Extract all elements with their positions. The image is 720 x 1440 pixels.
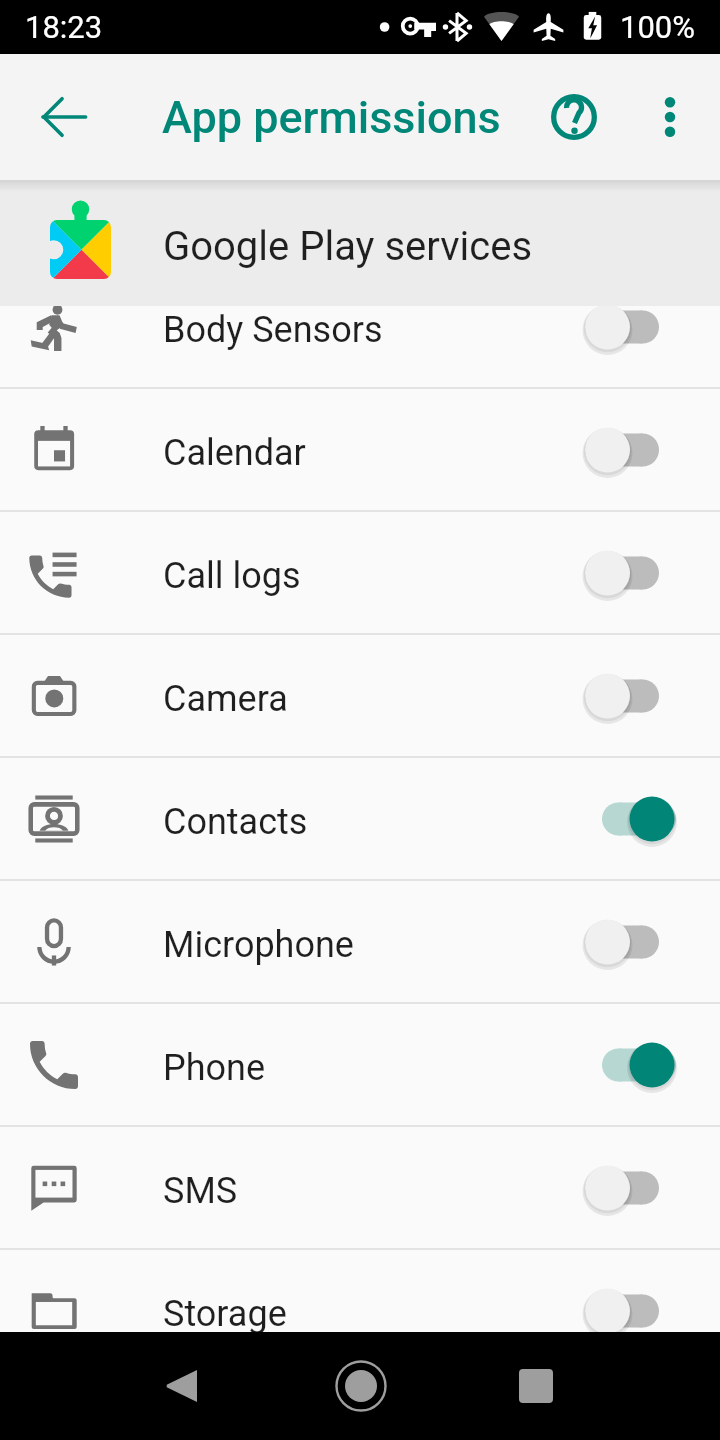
- button[interactable]: Google Play services: [0, 180, 720, 306]
- button[interactable]: SMS: [0, 1127, 720, 1248]
- button[interactable]: Calendar: [0, 389, 720, 510]
- staticText: Google Play services: [163, 223, 533, 270]
- button[interactable]: On: [571, 1025, 689, 1105]
- button[interactable]: More options: [622, 69, 718, 165]
- staticText: 100%: [620, 9, 695, 45]
- button[interactable]: Navigate up: [16, 69, 112, 165]
- button[interactable]: Off: [571, 410, 689, 490]
- staticText: SMS: [163, 1170, 238, 1212]
- button[interactable]: Off: [571, 1148, 689, 1228]
- staticText: Camera: [163, 678, 288, 720]
- button[interactable]: Contacts: [0, 758, 720, 879]
- button[interactable]: Body Sensors: [0, 266, 720, 387]
- button[interactable]: Home: [316, 1341, 406, 1431]
- staticText: Phone: [163, 1047, 266, 1089]
- staticText: Storage: [163, 1293, 287, 1335]
- button[interactable]: Recent apps: [491, 1341, 581, 1431]
- button[interactable]: Back: [136, 1341, 226, 1431]
- staticText: Contacts: [163, 801, 308, 843]
- staticText: Body Sensors: [163, 309, 383, 351]
- button[interactable]: Off: [571, 656, 689, 736]
- button[interactable]: Call logs: [0, 512, 720, 633]
- button[interactable]: Help: [526, 69, 622, 165]
- staticText: Call logs: [163, 555, 301, 597]
- staticText: Calendar: [163, 432, 306, 474]
- button[interactable]: Off: [571, 533, 689, 613]
- staticText: App permissions: [162, 91, 501, 144]
- button[interactable]: On: [571, 779, 689, 859]
- button[interactable]: Off: [571, 902, 689, 982]
- button[interactable]: Off: [571, 287, 689, 367]
- button[interactable]: Storage: [0, 1250, 720, 1371]
- staticText: Microphone: [163, 924, 354, 966]
- button[interactable]: Camera: [0, 635, 720, 756]
- staticText: 18:23: [25, 9, 103, 45]
- button[interactable]: Off: [571, 1271, 689, 1351]
- button[interactable]: Phone: [0, 1004, 720, 1125]
- button[interactable]: Microphone: [0, 881, 720, 1002]
